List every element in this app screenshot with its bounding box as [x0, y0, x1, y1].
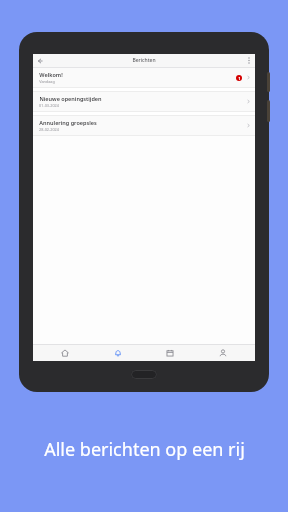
button[interactable]: More options	[242, 54, 255, 67]
button[interactable]: Annulering groepsles	[33, 116, 255, 135]
button[interactable]: Profile	[203, 345, 243, 361]
button[interactable]: Back	[33, 54, 46, 67]
button[interactable]: Home	[45, 345, 85, 361]
staticText: 28-02-2024	[39, 127, 59, 132]
staticText: Welkom!	[39, 71, 63, 78]
button[interactable]: Notifications	[98, 345, 138, 361]
staticText: Vandaag	[39, 79, 55, 84]
staticText: Berichten	[132, 57, 156, 64]
button[interactable]: Welkom!	[33, 68, 255, 87]
button[interactable]: Calendar	[150, 345, 190, 361]
staticText: 01-03-2024	[39, 103, 59, 108]
staticText: Nieuwe openingstijden	[39, 95, 102, 102]
staticText: 1	[238, 76, 241, 81]
button[interactable]: Home button	[131, 370, 157, 379]
staticText: Annulering groepsles	[39, 119, 97, 126]
button[interactable]: Nieuwe openingstijden	[33, 92, 255, 111]
staticText: Alle berichten op een rij	[44, 437, 245, 462]
